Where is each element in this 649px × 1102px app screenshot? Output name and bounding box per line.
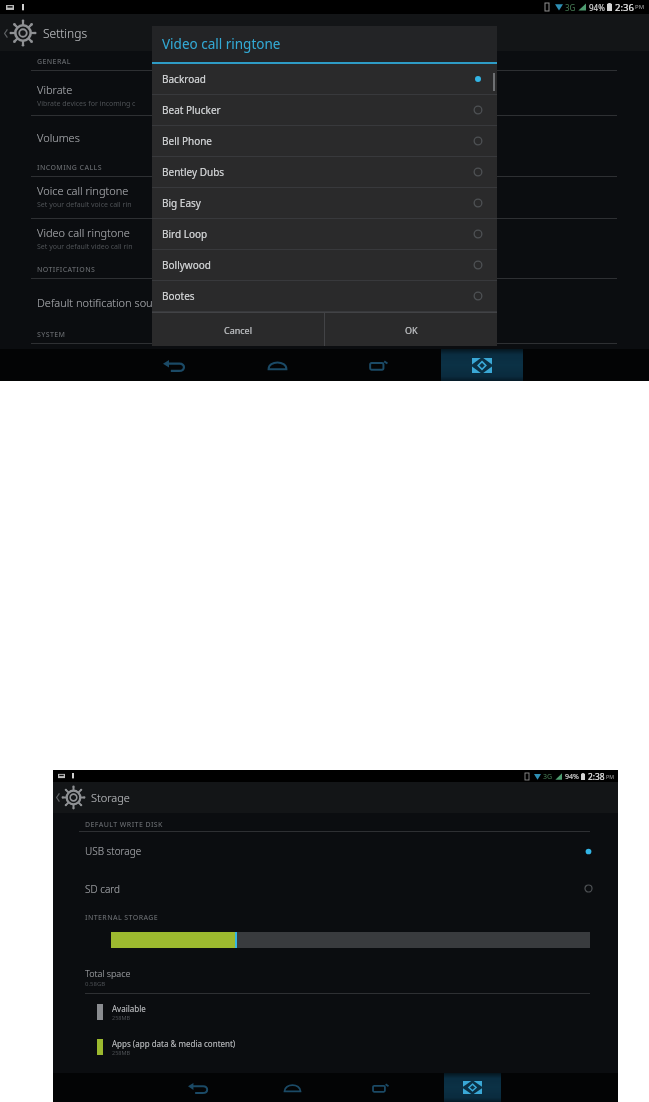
staticText: Bell Phone bbox=[162, 134, 212, 148]
button[interactable]: Video call ringtone bbox=[0, 219, 649, 264]
staticText: Volumes bbox=[37, 130, 80, 145]
button[interactable]: Backroad bbox=[152, 64, 497, 94]
button[interactable]: USB storage bbox=[53, 832, 618, 870]
button[interactable]: Back bbox=[187, 1073, 210, 1102]
staticText: Beat Plucker bbox=[162, 103, 221, 117]
staticText: 258MB bbox=[112, 1049, 131, 1056]
button[interactable]: Beat Plucker bbox=[152, 95, 497, 125]
button[interactable]: Apps (app data & media content) bbox=[53, 1029, 618, 1064]
button[interactable]: SD card bbox=[53, 870, 618, 907]
staticText: 3G bbox=[543, 771, 553, 781]
staticText: 258MB bbox=[112, 1014, 131, 1021]
staticText: 2:38 bbox=[588, 771, 605, 782]
staticText: INTERNAL STORAGE bbox=[85, 913, 159, 923]
staticText: Bootes bbox=[162, 289, 195, 303]
staticText: Bird Loop bbox=[162, 227, 208, 241]
button[interactable]: Screenshot bbox=[444, 1073, 501, 1102]
button[interactable]: Bollywood bbox=[152, 250, 497, 280]
staticText: Default notification sou bbox=[37, 295, 153, 310]
button[interactable]: Bentley Dubs bbox=[152, 157, 497, 187]
button[interactable]: Bootes bbox=[152, 281, 497, 311]
staticText: GENERAL bbox=[37, 57, 71, 67]
button[interactable]: Home bbox=[281, 1073, 304, 1102]
staticText: Video call ringtone bbox=[162, 35, 281, 53]
staticText: Big Easy bbox=[162, 196, 201, 210]
staticText: USB storage bbox=[85, 844, 142, 858]
staticText: Settings bbox=[43, 25, 88, 41]
button[interactable]: Volumes bbox=[0, 116, 649, 163]
staticText: SD card bbox=[85, 882, 121, 896]
staticText: PM bbox=[606, 773, 614, 780]
staticText: Video call ringtone bbox=[37, 225, 130, 240]
staticText: 94% bbox=[565, 771, 579, 781]
button[interactable]: Navigate up bbox=[53, 782, 88, 813]
staticText: Cancel bbox=[224, 324, 253, 336]
staticText: SYSTEM bbox=[37, 330, 66, 340]
staticText: Voice call ringtone bbox=[37, 183, 129, 198]
button[interactable]: Screenshot bbox=[441, 349, 523, 381]
button[interactable]: Bell Phone bbox=[152, 126, 497, 156]
button[interactable]: Cancel bbox=[152, 313, 324, 346]
staticText: Available bbox=[112, 1003, 146, 1014]
staticText: Set your default video call rin bbox=[37, 242, 133, 252]
button[interactable]: Recent apps bbox=[365, 349, 391, 381]
staticText: 3G bbox=[565, 2, 576, 13]
staticText: INCOMING CALLS bbox=[37, 163, 102, 173]
staticText: OK bbox=[405, 324, 418, 336]
button[interactable]: Default notification sou bbox=[0, 279, 649, 325]
staticText: Apps (app data & media content) bbox=[112, 1038, 236, 1049]
staticText: NOTIFICATIONS bbox=[37, 265, 96, 275]
staticText: Vibrate devices for incoming c bbox=[37, 99, 136, 109]
button[interactable]: Available bbox=[53, 994, 618, 1029]
button[interactable]: Home bbox=[264, 349, 290, 381]
button[interactable]: Vibrate bbox=[0, 71, 649, 116]
button[interactable]: Voice call ringtone bbox=[0, 177, 649, 219]
staticText: Bentley Dubs bbox=[162, 165, 225, 179]
button[interactable]: Big Easy bbox=[152, 188, 497, 218]
staticText: Set your default voice call rin bbox=[37, 200, 132, 210]
staticText: Storage bbox=[91, 790, 130, 805]
button[interactable]: Back bbox=[161, 349, 187, 381]
button[interactable]: Recent apps bbox=[369, 1073, 392, 1102]
staticText: 2:36 bbox=[615, 1, 634, 14]
staticText: Bollywood bbox=[162, 258, 211, 272]
staticText: Backroad bbox=[162, 72, 206, 86]
staticText: 94% bbox=[589, 2, 605, 13]
staticText: 0.58GB bbox=[85, 980, 106, 988]
staticText: Vibrate bbox=[37, 82, 73, 97]
staticText: PM bbox=[635, 3, 645, 11]
button[interactable]: Navigate up bbox=[0, 14, 40, 51]
staticText: DEFAULT WRITE DISK bbox=[85, 820, 163, 830]
button[interactable]: Bird Loop bbox=[152, 219, 497, 249]
staticText: Total space bbox=[85, 967, 131, 979]
button[interactable]: OK bbox=[325, 313, 497, 346]
